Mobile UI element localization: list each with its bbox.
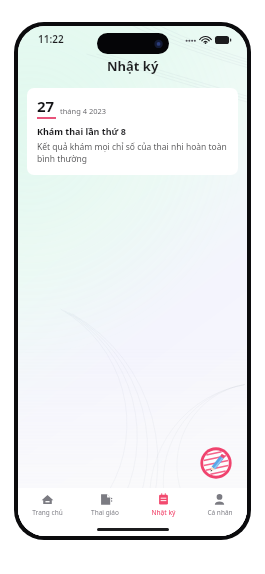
button[interactable]: 27 [27,88,238,175]
staticText: Trang chủ [32,508,63,517]
staticText: Thai giáo [91,508,119,517]
button[interactable]: Cá nhân [192,488,247,522]
button[interactable]: Thêm nhật ký [199,446,233,480]
staticText: tháng 4 2023 [60,106,107,116]
staticText: Cá nhân [207,508,233,517]
staticText: Nhật ký [107,57,159,75]
staticText: 27 [37,96,55,116]
staticText: Kết quả khám mọi chỉ số của thai nhi hoà… [37,141,228,165]
staticText: Khám thai lần thứ 8 [37,125,126,137]
button[interactable]: Thai giáo [76,488,134,522]
button[interactable]: Trang chủ [18,488,76,522]
button[interactable]: Nhật ký [134,488,192,522]
staticText: 11:22 [38,32,64,46]
staticText: Nhật ký [151,508,176,517]
